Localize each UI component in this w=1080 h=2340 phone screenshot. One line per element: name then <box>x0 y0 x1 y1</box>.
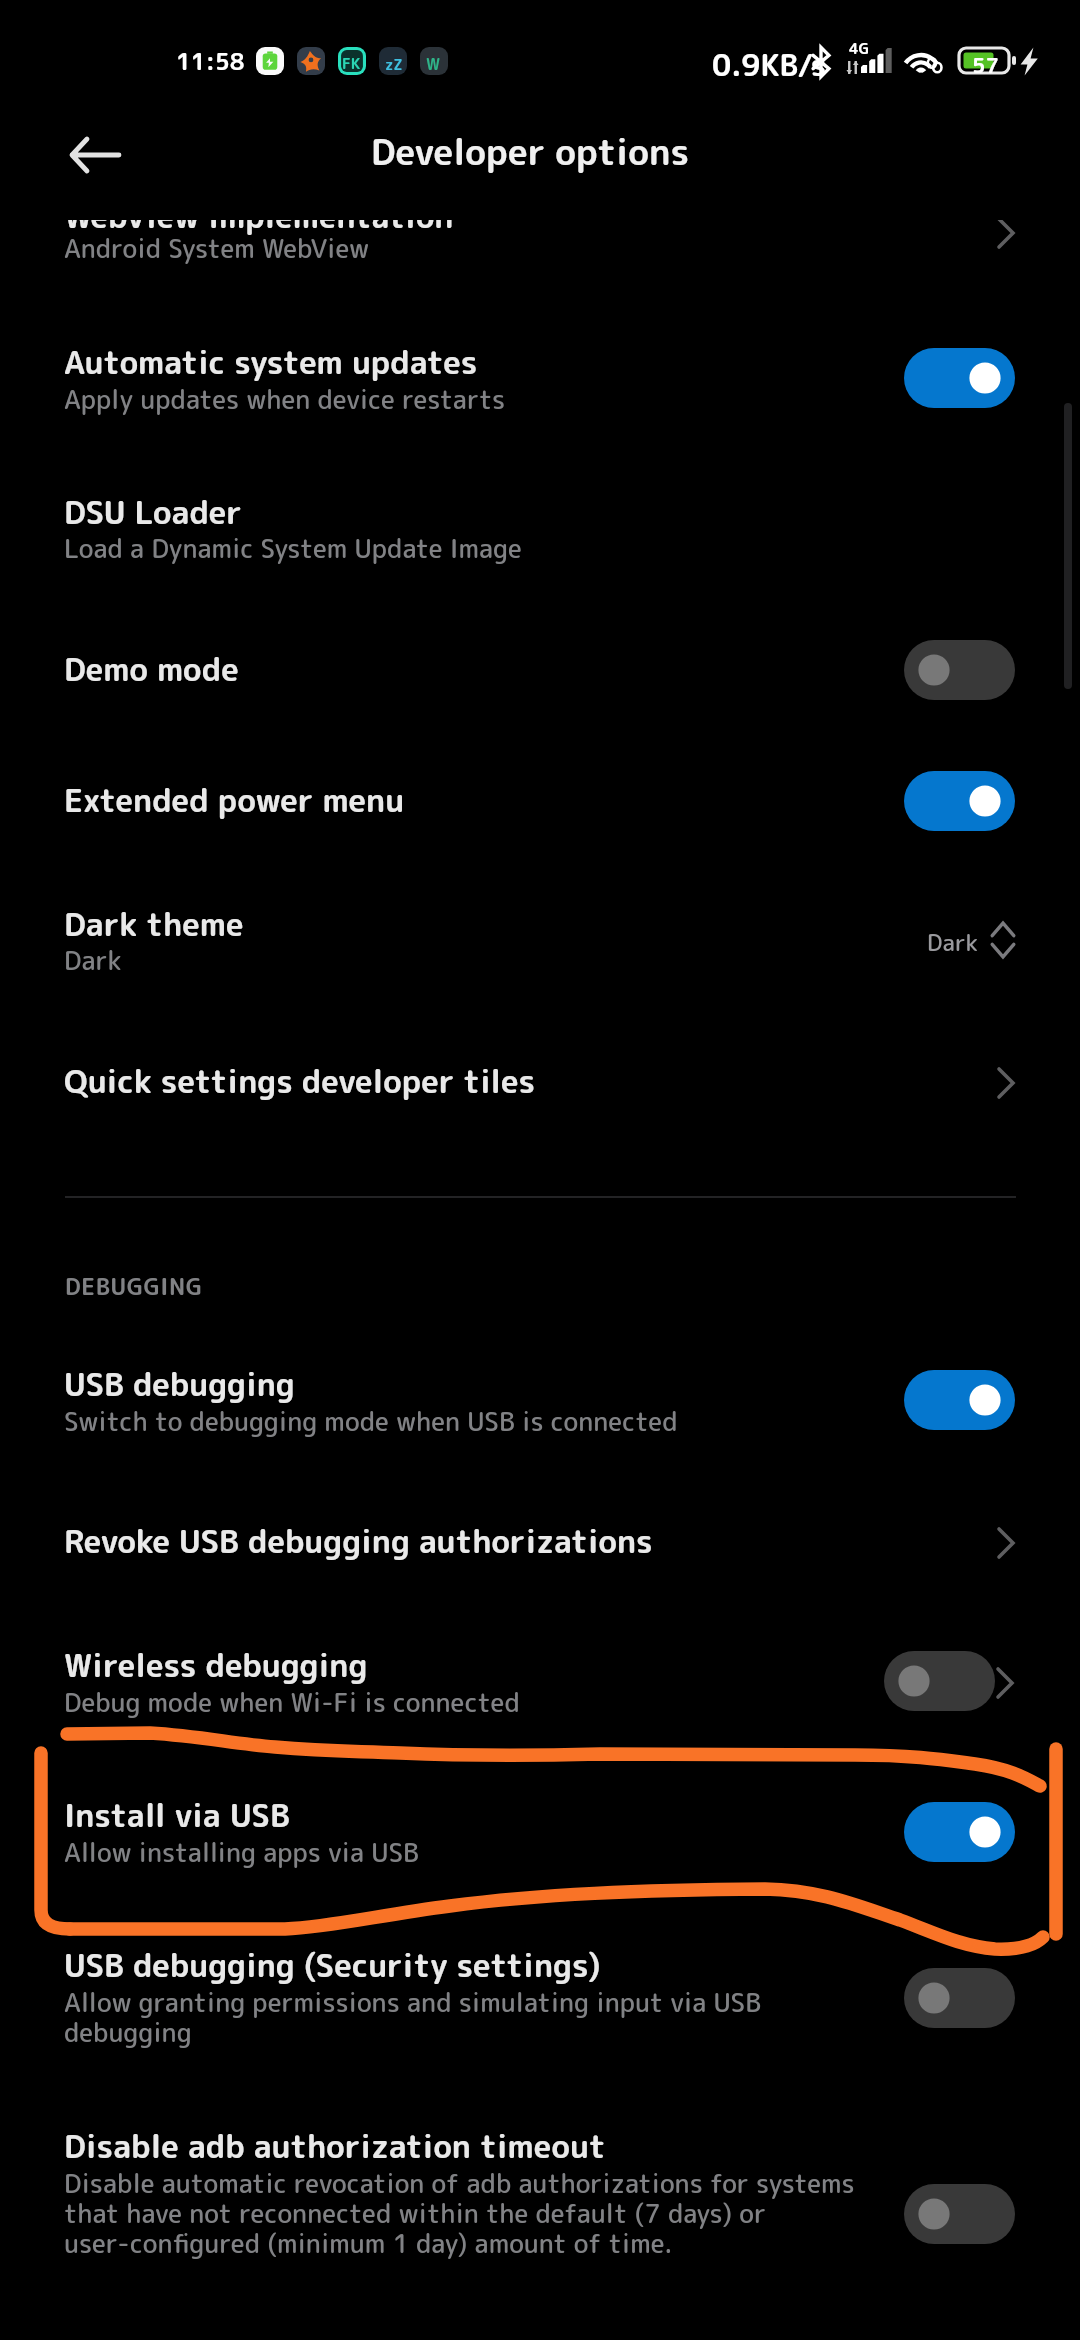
staticText: Extended power menu <box>64 778 405 823</box>
staticText: Apply updates when device restarts <box>64 381 1004 417</box>
button[interactable]: Switch on <box>904 1802 1015 1862</box>
staticText: 57 <box>972 50 999 79</box>
staticText: USB debugging <box>64 1362 295 1407</box>
button[interactable]: USB debugging (Security settings) <box>0 1910 1080 2075</box>
button[interactable]: Demo mode <box>0 610 1080 730</box>
staticText: Wireless debugging <box>64 1643 368 1688</box>
button[interactable]: Open <box>987 207 1039 259</box>
button[interactable]: Quick settings developer tiles <box>0 1025 1080 1140</box>
staticText: Load a Dynamic System Update Image <box>64 530 1004 566</box>
staticText: DSU Loader <box>64 490 242 535</box>
button[interactable]: Switch on <box>904 1370 1015 1430</box>
staticText: Allow granting permissions and simulatin… <box>64 1984 964 2050</box>
staticText: Dark <box>927 926 978 958</box>
staticText: Dark <box>64 942 1004 978</box>
staticText: FK <box>342 53 361 74</box>
button[interactable]: DSU Loader, Load a Dynamic System Update… <box>0 455 1080 595</box>
button[interactable]: Back <box>58 121 134 189</box>
staticText: Android System WebView <box>64 230 1004 266</box>
button[interactable]: USB debugging, Switch to debugging mode … <box>0 1330 1080 1470</box>
staticText: 11:58 <box>176 45 245 77</box>
button[interactable]: Change dark theme <box>918 912 1024 970</box>
staticText: zZ <box>385 54 403 75</box>
staticText: 4G <box>849 38 870 59</box>
staticText: W <box>426 53 441 75</box>
staticText: Demo mode <box>64 647 239 692</box>
staticText: Dark theme <box>64 902 244 947</box>
staticText: Switch to debugging mode when USB is con… <box>64 1403 1004 1439</box>
staticText: Automatic system updates <box>64 340 478 385</box>
button[interactable]: WebView implementation, Android System W… <box>0 180 1080 310</box>
button[interactable]: Switch on <box>904 771 1015 831</box>
staticText: Quick settings developer tiles <box>64 1059 536 1104</box>
staticText: Allow installing apps via USB <box>64 1834 1004 1870</box>
button[interactable]: Open <box>987 1517 1039 1569</box>
button[interactable]: Open <box>987 1057 1039 1109</box>
staticText: Disable adb authorization timeout <box>64 2124 606 2169</box>
button[interactable]: Switch off <box>884 1651 995 1711</box>
button[interactable]: Switch off <box>904 640 1015 700</box>
staticText: Disable automatic revocation of adb auth… <box>64 2165 964 2261</box>
staticText: Developer options <box>371 126 690 176</box>
button[interactable]: Revoke USB debugging authorizations <box>0 1485 1080 1600</box>
button[interactable]: Open <box>986 1657 1038 1709</box>
button[interactable]: Disable adb authorization timeout <box>0 2090 1080 2280</box>
staticText: USB debugging (Security settings) <box>64 1943 601 1988</box>
staticText: Revoke USB debugging authorizations <box>64 1519 653 1564</box>
staticText: Install via USB <box>64 1793 290 1838</box>
button[interactable]: Install via USB, Allow installing apps v… <box>0 1760 1080 1900</box>
staticText: WebView implementation <box>64 194 454 239</box>
button[interactable]: Switch on <box>904 348 1015 408</box>
staticText: DEBUGGING <box>65 1270 203 1302</box>
button[interactable]: Extended power menu <box>0 745 1080 860</box>
staticText: Debug mode when Wi-Fi is connected <box>64 1684 1004 1720</box>
button[interactable]: Dark theme, Dark <box>0 870 1080 1000</box>
button[interactable]: Switch off <box>904 1968 1015 2028</box>
staticText: 0.9KB/s <box>712 44 827 86</box>
button[interactable]: Wireless debugging, Debug mode when Wi-F… <box>0 1610 1080 1745</box>
button[interactable]: Switch off <box>904 2184 1015 2244</box>
button[interactable]: Automatic system updates, Apply updates … <box>0 310 1080 455</box>
